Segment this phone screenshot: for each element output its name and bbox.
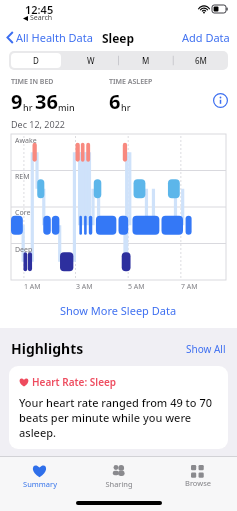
button[interactable]: Browse [158, 457, 237, 495]
staticText: Show All [186, 342, 226, 356]
staticText: Highlights [11, 339, 84, 358]
button[interactable]: Heart Rate: Sleep [9, 366, 228, 449]
staticText: 12:45 [25, 2, 54, 17]
button[interactable]: Show All [186, 342, 226, 356]
staticText: Sharing [105, 479, 133, 489]
staticText: TIME IN BED [11, 77, 54, 87]
button[interactable]: Add Data [182, 30, 230, 45]
staticText: Search [30, 13, 53, 23]
staticText: 5 AM [128, 282, 145, 292]
staticText: hr [121, 101, 131, 113]
staticText: All Health Data [16, 30, 93, 45]
staticText: 6 [109, 88, 121, 115]
button[interactable]: 6M [175, 53, 226, 68]
staticText: Show More Sleep Data [60, 303, 177, 318]
staticText: 7 AM [181, 282, 198, 292]
staticText: Heart Rate: Sleep [32, 375, 117, 389]
staticText: Awake [15, 136, 37, 146]
staticText: Your heart rate ranged from 49 to 70 bea… [19, 395, 218, 440]
staticText: D [33, 55, 39, 66]
staticText: Add Data [182, 30, 230, 45]
staticText: Deep [15, 245, 33, 255]
staticText: 1 AM [24, 282, 41, 292]
staticText: 9 [11, 88, 23, 115]
staticText: Dec 12, 2022 [11, 118, 65, 130]
staticText: W [87, 55, 95, 66]
button[interactable]: Sharing [79, 457, 158, 495]
staticText: REM [15, 172, 30, 182]
button[interactable]: Information [213, 93, 228, 108]
staticText: 6M [195, 55, 207, 66]
button[interactable]: Summary [0, 457, 79, 495]
button[interactable]: All Health Data [6, 30, 93, 45]
button[interactable]: M [120, 53, 171, 68]
button[interactable]: D [11, 53, 61, 68]
staticText: hr [23, 101, 33, 113]
button[interactable]: W [65, 53, 116, 68]
button[interactable]: Show More Sleep Data [0, 296, 237, 324]
staticText: TIME ASLEEP [109, 77, 153, 87]
staticText: min [58, 101, 75, 113]
staticText: Sleep [102, 30, 135, 46]
staticText: Summary [23, 479, 57, 489]
staticText: Browse [185, 478, 211, 488]
staticText: 36 [35, 88, 58, 115]
staticText: M [142, 55, 150, 66]
staticText: Core [15, 208, 31, 218]
staticText: 3 AM [76, 282, 93, 292]
